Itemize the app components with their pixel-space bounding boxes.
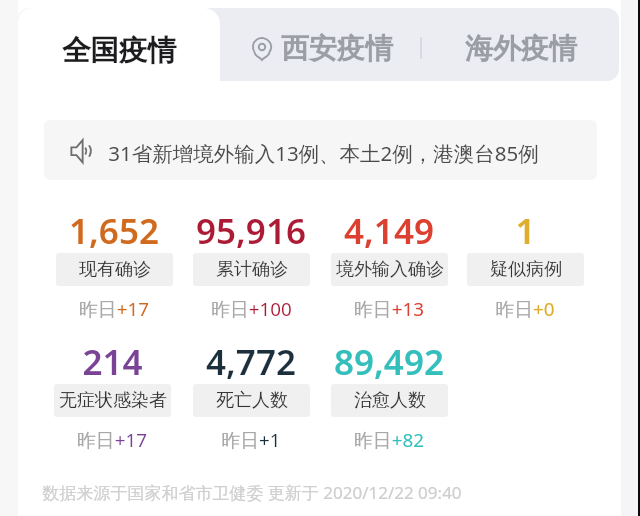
staticText: 95,916 — [196, 207, 306, 255]
staticText: 昨日+1 — [221, 427, 281, 453]
button[interactable]: 无症状感染者 — [54, 384, 171, 417]
staticText: 昨日+100 — [211, 296, 292, 322]
button[interactable]: 境外输入确诊 — [331, 253, 448, 286]
staticText: 昨日+17 — [77, 427, 147, 453]
button[interactable]: 治愈人数 — [331, 384, 448, 417]
staticText: 无症状感染者 — [59, 389, 167, 412]
button[interactable]: 4,772 — [166, 338, 336, 386]
staticText: 31省新增境外输入13例、本土2例，港澳台85例 — [108, 139, 539, 167]
staticText: 全国疫情 — [62, 33, 176, 69]
button[interactable]: Announcement — [44, 120, 597, 180]
staticText: 数据来源于国家和省市卫健委 更新于 2020/12/22 09:40 — [42, 481, 462, 504]
staticText: 治愈人数 — [354, 389, 426, 412]
other: Xi'an epidemic — [252, 37, 272, 61]
button[interactable]: Xi'an epidemic — [252, 31, 393, 66]
button[interactable]: 海外疫情 — [465, 31, 577, 66]
button[interactable]: 全国疫情 — [18, 8, 220, 103]
staticText: 境外输入确诊 — [336, 258, 444, 281]
button[interactable]: 疑似病例 — [467, 253, 584, 286]
staticText: 1,652 — [69, 207, 159, 255]
staticText: 死亡人数 — [216, 389, 288, 412]
staticText: 西安疫情 — [281, 31, 393, 66]
button[interactable]: 1 — [440, 207, 610, 255]
staticText: 现有确诊 — [79, 258, 151, 281]
button[interactable]: 1,652 — [29, 207, 199, 255]
staticText: 89,492 — [334, 338, 444, 386]
staticText: 4,772 — [206, 338, 296, 386]
staticText: 昨日+82 — [354, 427, 424, 453]
button[interactable]: 死亡人数 — [193, 384, 310, 417]
button[interactable]: 95,916 — [166, 207, 336, 255]
staticText: 海外疫情 — [465, 31, 577, 66]
button[interactable]: 89,492 — [304, 338, 474, 386]
staticText: 4,149 — [344, 207, 434, 255]
button[interactable]: 累计确诊 — [193, 253, 310, 286]
button[interactable]: 现有确诊 — [56, 253, 173, 286]
staticText: 昨日+0 — [495, 296, 555, 322]
staticText: 昨日+17 — [79, 296, 149, 322]
staticText: 累计确诊 — [216, 258, 288, 281]
staticText: 1 — [515, 207, 536, 255]
staticText: 214 — [82, 338, 143, 386]
other: Announcement — [70, 138, 93, 164]
staticText: 疑似病例 — [490, 258, 562, 281]
button[interactable]: 4,149 — [304, 207, 474, 255]
button[interactable]: 214 — [27, 338, 197, 386]
staticText: 昨日+13 — [354, 296, 424, 322]
